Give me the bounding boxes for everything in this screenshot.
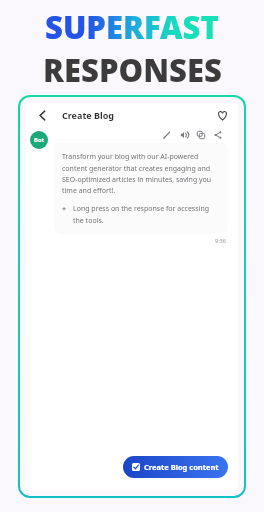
button[interactable]: Edit (161, 129, 173, 141)
staticText: 9:36 (215, 237, 226, 244)
button[interactable]: Favorite (212, 105, 232, 125)
button[interactable]: Create Blog (62, 109, 114, 121)
staticText: Bot (34, 136, 45, 144)
button[interactable]: Create Blog content (123, 456, 228, 478)
button[interactable]: Copy (195, 129, 207, 141)
staticText: * (62, 204, 67, 214)
staticText: Create Blog content (144, 462, 219, 472)
button[interactable]: Read aloud (178, 129, 190, 141)
button[interactable]: Back (32, 105, 52, 125)
staticText: RESPONSES (43, 49, 222, 91)
button[interactable]: Share (212, 129, 224, 141)
staticText: SUPERFAST (45, 6, 219, 48)
staticText: Transform your blog with our AI-powered … (62, 152, 220, 195)
button[interactable]: Transform your blog with our AI-powered … (54, 143, 228, 234)
staticText: Long press on the response for accessing… (73, 204, 220, 225)
